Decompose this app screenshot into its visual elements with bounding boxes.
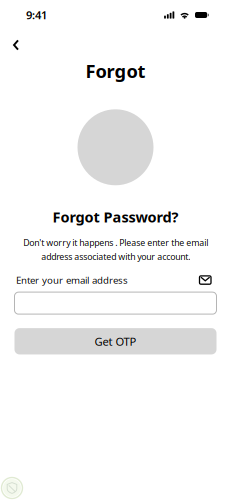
staticText: Don't worry it happens . Please enter th… xyxy=(23,237,208,249)
staticText: Get OTP xyxy=(94,334,136,349)
staticText: Forgot xyxy=(85,59,145,83)
button[interactable]: Back xyxy=(6,35,26,55)
staticText: Forgot Password? xyxy=(52,207,178,227)
staticText: address associated with your account. xyxy=(41,251,190,263)
staticText: Enter your email address xyxy=(16,273,128,287)
button[interactable]: Get OTP xyxy=(14,328,216,354)
staticText: 9:41 xyxy=(26,7,47,23)
